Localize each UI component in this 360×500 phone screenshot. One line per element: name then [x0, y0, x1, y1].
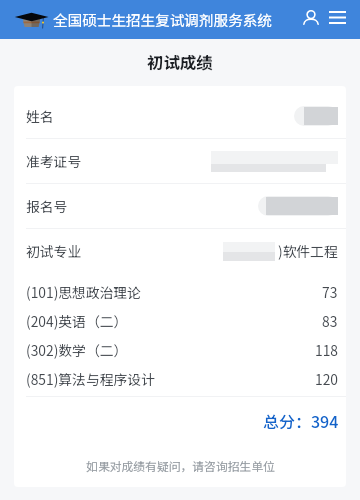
- staticText: 报名号: [26, 196, 68, 216]
- staticText: 初试专业: [26, 241, 82, 261]
- button[interactable]: (101)思想政治理论: [26, 277, 338, 306]
- button[interactable]: Account: [288, 0, 322, 39]
- staticText: 姓名: [26, 106, 54, 126]
- button[interactable]: (302)数学（二）: [26, 335, 338, 364]
- button[interactable]: 报名号: [14, 184, 346, 229]
- staticText: 120: [315, 369, 338, 389]
- staticText: 准考证号: [26, 151, 82, 171]
- button[interactable]: Menu: [322, 0, 352, 39]
- staticText: 118: [315, 340, 338, 360]
- button[interactable]: (204)英语（二）: [26, 306, 338, 335]
- staticText: )软件工程: [278, 241, 338, 261]
- staticText: 初试成绩: [147, 50, 213, 74]
- staticText: 如果对成绩有疑问，请咨询招生单位: [86, 457, 275, 474]
- staticText: (101)思想政治理论: [26, 282, 142, 302]
- staticText: 总分：394: [263, 409, 339, 432]
- staticText: 全国硕士生招生复试调剂服务系统: [53, 9, 272, 30]
- button[interactable]: 初试专业: [14, 229, 346, 273]
- button[interactable]: 准考证号: [14, 139, 346, 184]
- staticText: 83: [322, 311, 338, 331]
- button[interactable]: (851)算法与程序设计: [26, 364, 338, 393]
- staticText: (302)数学（二）: [26, 340, 128, 360]
- button[interactable]: 姓名: [14, 94, 346, 139]
- staticText: (204)英语（二）: [26, 311, 128, 331]
- staticText: (851)算法与程序设计: [26, 369, 155, 389]
- staticText: 73: [322, 282, 338, 302]
